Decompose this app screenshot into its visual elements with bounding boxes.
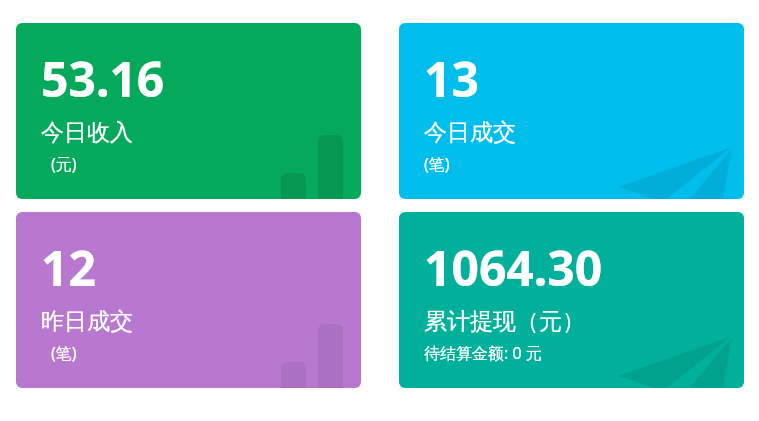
staticText: 昨日成交 <box>41 307 133 336</box>
button[interactable]: 今日收入 53.16 元 <box>16 23 361 199</box>
staticText: 今日收入 <box>41 118 133 147</box>
staticText: (笔) <box>51 342 77 364</box>
staticText: 累计提现（元） <box>424 307 585 336</box>
staticText: (笔) <box>424 153 450 175</box>
staticText: 今日成交 <box>424 118 516 147</box>
staticText: 13 <box>424 46 479 111</box>
button[interactable]: 今日成交 13 笔 <box>399 23 744 199</box>
staticText: 待结算金额: 0 元 <box>424 342 542 364</box>
button[interactable]: 昨日成交 12 笔 <box>16 212 361 388</box>
staticText: 12 <box>41 235 96 300</box>
staticText: 53.16 <box>41 46 165 111</box>
staticText: (元) <box>51 153 77 175</box>
staticText: 1064.30 <box>424 235 603 300</box>
button[interactable]: 累计提现 1064.30 元，待结算金额 0 元 <box>399 212 744 388</box>
